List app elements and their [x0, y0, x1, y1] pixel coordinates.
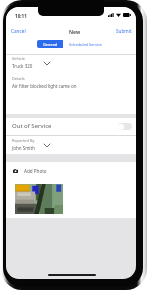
- staticText: Details: [12, 76, 25, 81]
- button[interactable]: Details: [6, 74, 136, 114]
- staticText: Submit: [116, 28, 132, 34]
- button[interactable]: Add Photo: [6, 162, 136, 180]
- staticText: Add Photo: [24, 168, 47, 174]
- button[interactable]: General: [37, 40, 63, 48]
- button[interactable]: Vehicle: [6, 55, 136, 74]
- button[interactable]: Scheduled Service: [63, 40, 107, 48]
- staticText: 10:11: [15, 13, 27, 19]
- staticText: John Smith: [12, 145, 35, 151]
- staticText: New: [69, 29, 81, 36]
- button[interactable]: Out of Service: [6, 118, 136, 135]
- button[interactable]: Submit: [111, 26, 136, 37]
- staticText: Truck 320: [12, 63, 33, 69]
- staticText: Cancel: [11, 28, 26, 34]
- staticText: General: [43, 42, 58, 47]
- staticText: Scheduled Service: [69, 42, 102, 47]
- staticText: Vehicle: [12, 56, 25, 61]
- staticText: Out of Service: [12, 122, 52, 130]
- staticText: Reported By: [12, 138, 35, 143]
- button[interactable]: Reported By: [6, 136, 136, 154]
- staticText: Air filter blocked light came on: [12, 83, 77, 89]
- button[interactable]: Cancel: [6, 26, 31, 37]
